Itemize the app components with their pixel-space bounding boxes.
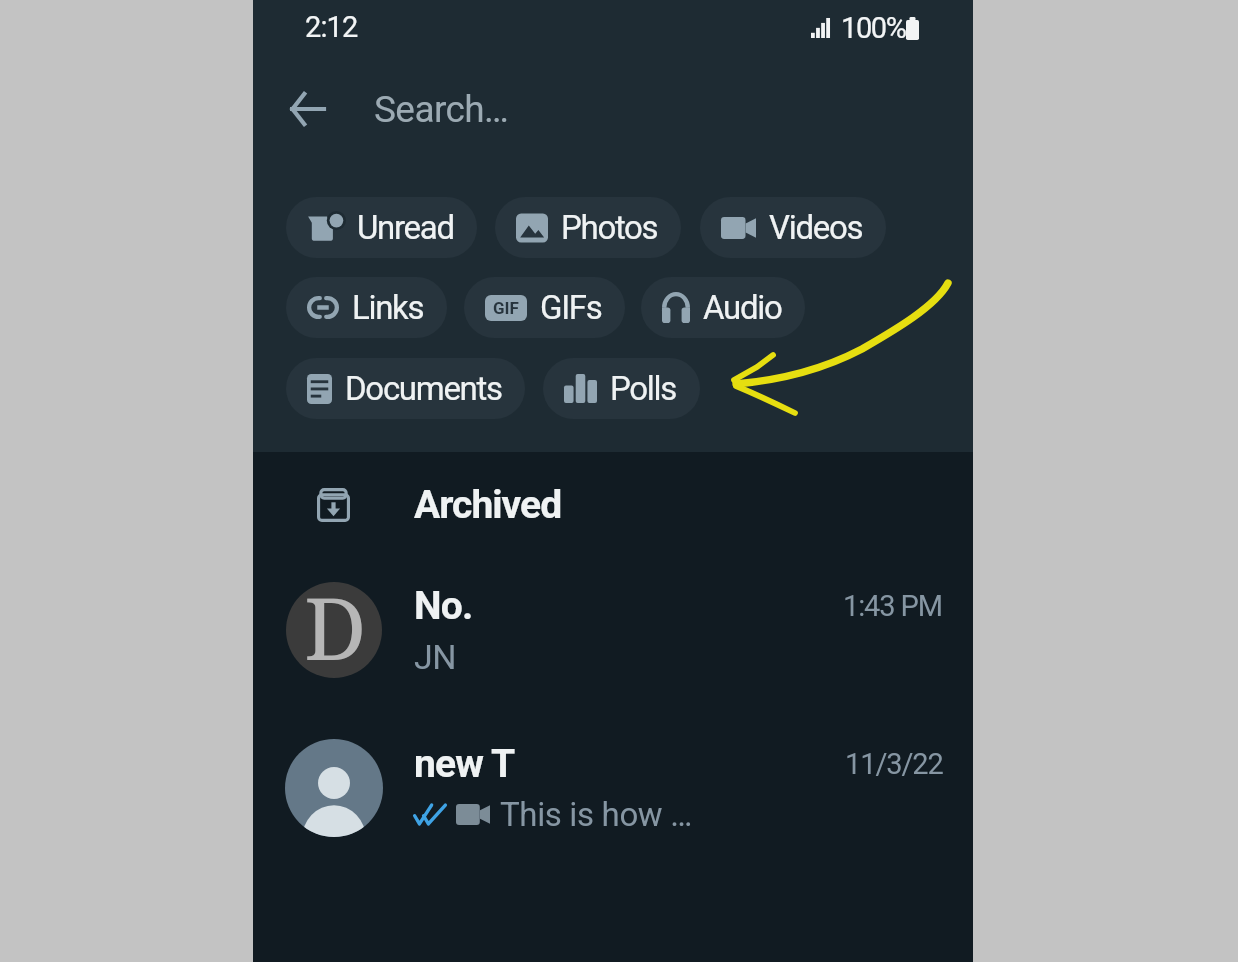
button[interactable]: new T (253, 710, 973, 865)
button[interactable]: Documents (286, 358, 525, 419)
staticText: Search… (374, 88, 509, 131)
staticText: 11/3/22 (845, 747, 943, 781)
staticText: Unread (357, 208, 454, 247)
staticText: D (304, 582, 367, 664)
button[interactable]: Videos (700, 197, 886, 258)
staticText: 100% (841, 11, 906, 45)
button[interactable]: Archived (253, 455, 973, 555)
button[interactable]: GIF (464, 277, 625, 338)
button[interactable]: Polls (543, 358, 700, 419)
staticText: GIFs (540, 288, 602, 327)
staticText: Documents (345, 369, 502, 408)
staticText: Polls (610, 369, 677, 408)
staticText: JN (414, 637, 457, 677)
staticText: Archived (414, 482, 562, 528)
staticText: 2:12 (305, 10, 358, 44)
button[interactable]: Links (286, 277, 447, 338)
button[interactable]: Photos (495, 197, 681, 258)
staticText: Photos (561, 208, 658, 247)
staticText: 1:43 PM (843, 589, 943, 623)
button[interactable]: D (253, 552, 973, 707)
staticText: Audio (703, 288, 782, 327)
button[interactable]: Audio (641, 277, 805, 338)
button[interactable]: Unread (286, 197, 477, 258)
staticText: This is how … (500, 795, 692, 834)
staticText: new T (414, 741, 515, 787)
staticText: Links (352, 288, 424, 327)
staticText: Videos (769, 208, 863, 247)
staticText: GIF (493, 298, 519, 318)
staticText: No. (414, 583, 473, 629)
button[interactable]: Back (272, 74, 342, 144)
